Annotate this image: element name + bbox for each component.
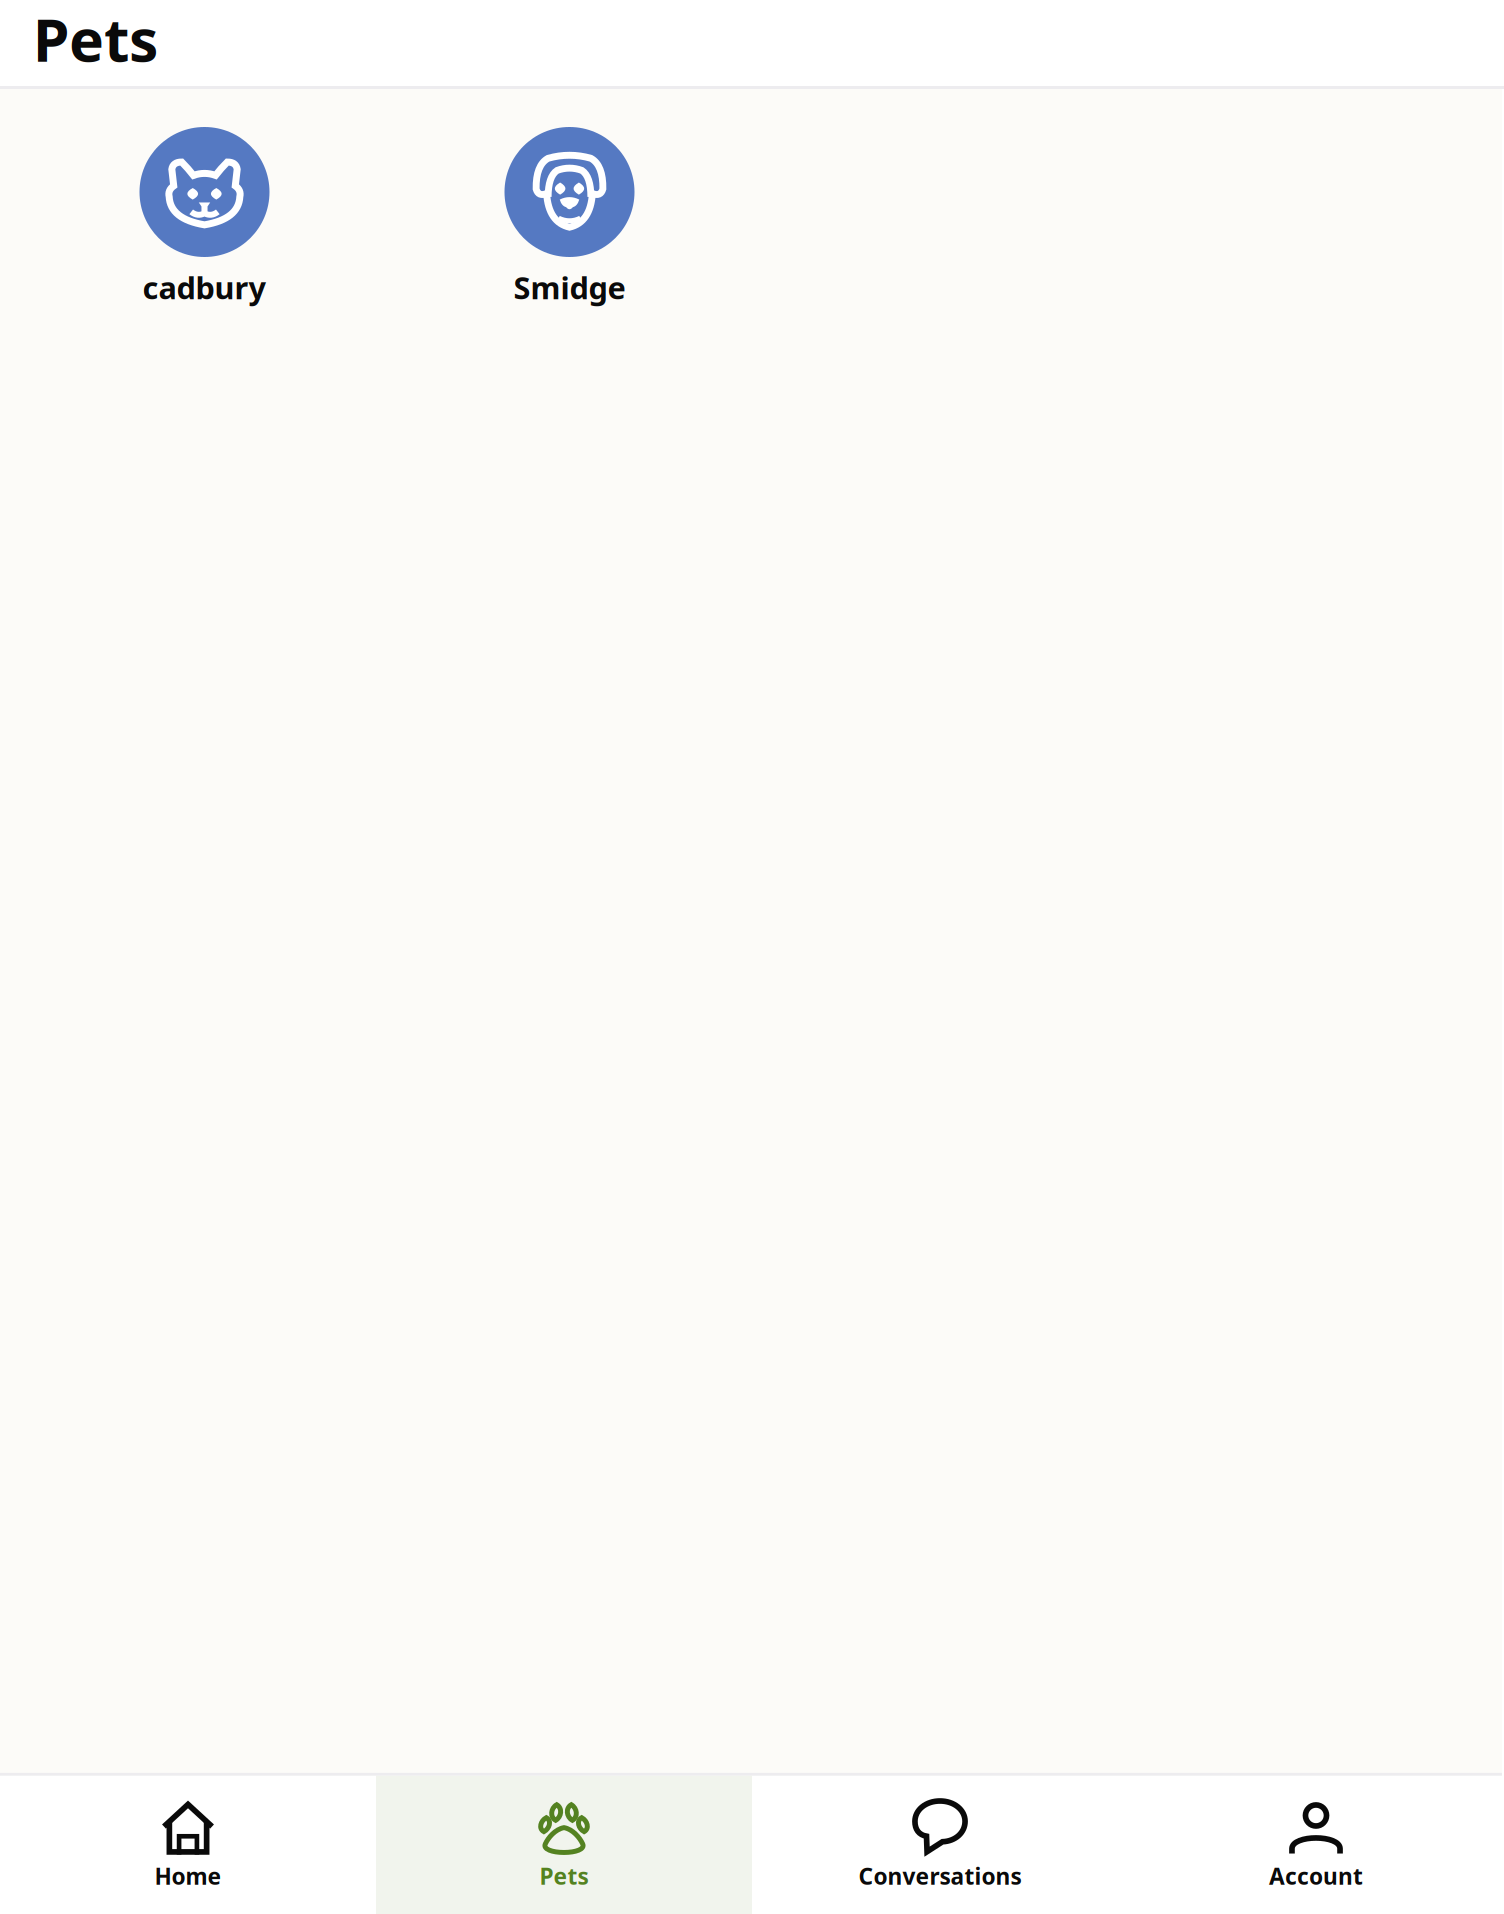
- staticText: Smidge: [513, 267, 625, 308]
- button[interactable]: Pets: [376, 1776, 752, 1914]
- staticText: Pets: [33, 0, 158, 78]
- button[interactable]: Smidge: [387, 127, 752, 308]
- staticText: Pets: [539, 1861, 588, 1891]
- button[interactable]: Account: [1128, 1776, 1504, 1914]
- staticText: Conversations: [858, 1861, 1021, 1891]
- staticText: cadbury: [142, 267, 266, 308]
- button[interactable]: cadbury: [22, 127, 387, 308]
- button[interactable]: Home: [0, 1776, 376, 1914]
- staticText: Home: [154, 1861, 221, 1891]
- button[interactable]: Conversations: [752, 1776, 1128, 1914]
- staticText: Account: [1269, 1861, 1363, 1891]
